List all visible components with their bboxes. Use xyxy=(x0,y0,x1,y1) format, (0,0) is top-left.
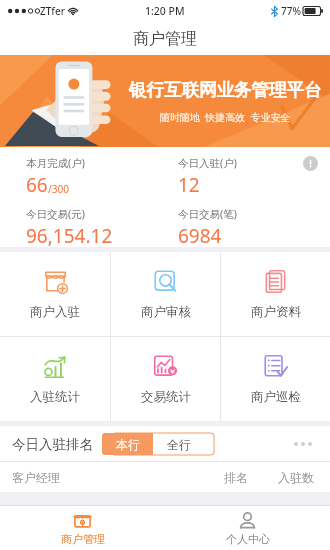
staticText: 入驻数 xyxy=(278,470,314,485)
button[interactable]: 本行 xyxy=(102,433,153,455)
staticText: 商户审核 xyxy=(141,304,191,320)
staticText: 12 xyxy=(178,172,200,198)
button[interactable]: 全行 xyxy=(153,433,204,455)
staticText: 今日交易(元) xyxy=(26,207,85,221)
staticText: 1:20 PM xyxy=(145,4,185,18)
staticText: 本月完成(户) xyxy=(26,156,85,170)
button[interactable]: 商户巡检 xyxy=(221,337,330,421)
staticText: 今日交易(笔) xyxy=(178,207,237,221)
staticText: 商户管理 xyxy=(133,29,197,49)
staticText: 排名 xyxy=(224,470,248,485)
button[interactable]: 入驻统计 xyxy=(0,337,110,421)
button[interactable]: 个人中心 xyxy=(165,506,330,550)
staticText: 66 xyxy=(26,172,48,198)
staticText: 商户巡检 xyxy=(251,389,301,405)
staticText: 银行互联网业务管理平台 xyxy=(129,79,322,101)
button[interactable]: 说明 xyxy=(303,156,318,171)
button[interactable]: 更多 xyxy=(290,438,316,450)
staticText: /300 xyxy=(48,182,69,196)
staticText: 96,154.12 xyxy=(26,223,113,247)
staticText: 商户管理 xyxy=(61,532,105,546)
staticText: 入驻统计 xyxy=(30,389,80,405)
staticText: 77% xyxy=(281,4,301,18)
button[interactable]: 商户资料 xyxy=(221,252,330,336)
staticText: 本行 xyxy=(116,437,140,452)
button[interactable]: 商户入驻 xyxy=(0,252,110,336)
staticText: 个人中心 xyxy=(226,532,270,546)
staticText: 客户经理 xyxy=(12,470,60,485)
button[interactable]: 商户管理 xyxy=(0,506,165,550)
staticText: 6984 xyxy=(178,223,222,247)
staticText: ZTfer xyxy=(40,4,65,18)
staticText: 今日入驻(户) xyxy=(178,156,237,170)
staticText: 商户入驻 xyxy=(30,304,80,320)
staticText: 随时随地 快捷高效 专业安全 xyxy=(160,110,291,124)
button[interactable]: 商户审核 xyxy=(111,252,220,336)
staticText: 交易统计 xyxy=(141,389,191,405)
button[interactable]: 交易统计 xyxy=(111,337,220,421)
staticText: 全行 xyxy=(167,437,191,452)
staticText: 商户资料 xyxy=(251,304,301,320)
staticText: 今日入驻排名 xyxy=(12,436,93,453)
